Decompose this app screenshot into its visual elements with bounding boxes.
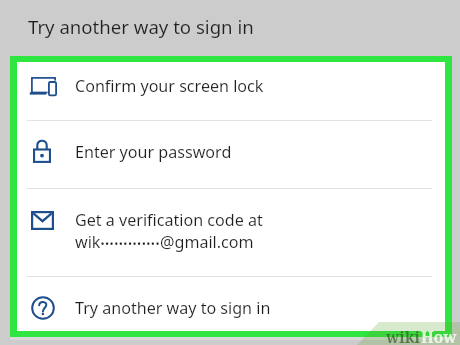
staticText: How — [421, 326, 457, 345]
button[interactable]: Password — [17, 121, 445, 188]
button[interactable]: Email — [17, 189, 445, 276]
button[interactable]: Help — [17, 277, 445, 320]
button[interactable]: Screen lock — [17, 62, 445, 120]
other: Password — [33, 139, 51, 163]
staticText: Try another way to sign in — [28, 14, 254, 39]
other: Email — [31, 211, 54, 230]
staticText: wiki — [386, 326, 421, 345]
other: Screen lock — [31, 77, 57, 96]
staticText: Get a verification code at wik••••••••••… — [75, 209, 263, 253]
other: Help — [31, 296, 55, 320]
staticText: Confirm your screen lock — [75, 75, 264, 97]
staticText: Enter your password — [75, 141, 232, 163]
staticText: Try another way to sign in — [75, 297, 271, 319]
